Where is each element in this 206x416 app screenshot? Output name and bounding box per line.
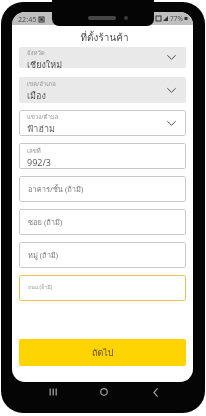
staticText: ถนน (ถ้ามี) [28, 283, 53, 291]
button[interactable]: หมู่ (ถ้ามี) [19, 242, 186, 268]
button[interactable]: ถัดไป [19, 339, 186, 366]
staticText: 22:45 [18, 14, 37, 24]
button[interactable]: อาคาร/ชั้น (ถ้ามี) [19, 176, 186, 202]
staticText: เขต/อำเภอ [27, 79, 56, 89]
staticText: เมือง [27, 89, 46, 103]
button[interactable]: จังหวัด [19, 47, 186, 68]
staticText: ฟ้าฮ่าม [27, 122, 55, 136]
staticText: อาคาร/ชั้น (ถ้ามี) [28, 183, 84, 195]
staticText: เชียงใหม่ [27, 58, 63, 68]
staticText: แขวง/ตำบล [27, 112, 59, 122]
staticText: ซอย (ถ้ามี) [28, 216, 63, 228]
button[interactable]: Home [89, 380, 119, 404]
staticText: 77% [170, 14, 183, 23]
staticText: ที่ตั้งร้านค้า [14, 30, 193, 46]
button[interactable]: Recent apps [38, 380, 68, 404]
staticText: เลขที่ [27, 146, 41, 156]
staticText: จังหวัด [27, 48, 45, 58]
staticText: ถัดไป [92, 346, 114, 360]
staticText: 992/3 [27, 156, 51, 168]
button[interactable]: แขวง/ตำบล [19, 110, 186, 136]
button[interactable]: เลขที่ [19, 143, 186, 169]
staticText: หมู่ (ถ้ามี) [28, 249, 59, 261]
button[interactable]: Back [140, 380, 170, 404]
button[interactable]: เขต/อำเภอ [19, 77, 186, 103]
button[interactable]: ซอย (ถ้ามี) [19, 209, 186, 235]
button[interactable]: ถนน (ถ้ามี) [19, 275, 186, 301]
